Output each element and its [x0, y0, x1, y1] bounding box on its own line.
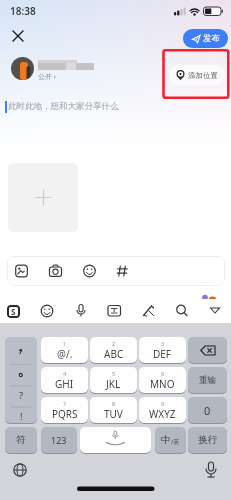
staticText: 4 [63, 370, 67, 377]
button[interactable]: 9 [139, 397, 186, 423]
button[interactable]: 2 [90, 337, 137, 363]
button[interactable] [72, 302, 90, 320]
staticText: 5 [112, 370, 116, 377]
button[interactable] [206, 302, 224, 320]
staticText: 18:38 [10, 4, 36, 18]
button[interactable]: 发布 [183, 29, 228, 48]
staticText: 换行 [198, 434, 217, 446]
button[interactable]: S [7, 305, 20, 318]
staticText: 123 [51, 434, 67, 446]
button[interactable] [8, 26, 28, 46]
staticText: MNO [150, 377, 175, 391]
button[interactable] [105, 302, 123, 320]
staticText: TUV [104, 407, 123, 421]
staticText: 符 [16, 434, 26, 446]
button[interactable]: 1 [41, 337, 88, 363]
staticText: 发布 [203, 33, 220, 44]
staticText: 添加位置 [188, 71, 218, 80]
staticText: ABC [104, 347, 124, 361]
button[interactable] [80, 427, 151, 453]
button[interactable]: 123 [41, 427, 77, 453]
staticText: WXYZ [149, 407, 176, 421]
staticText: 重输 [199, 375, 216, 386]
staticText: 公开 › [38, 72, 56, 82]
staticText: 7 [63, 400, 67, 407]
button[interactable] [139, 302, 157, 320]
staticText: GHI [55, 377, 74, 391]
staticText: 6 [161, 370, 165, 377]
staticText: ! [20, 410, 23, 423]
button[interactable]: 4 [41, 367, 88, 393]
button[interactable]: 6 [139, 367, 186, 393]
button[interactable] [81, 262, 99, 280]
staticText: @/. [57, 347, 73, 361]
button[interactable]: 中 [155, 427, 186, 453]
button[interactable]: 换行 [188, 427, 227, 453]
staticText: 3 [161, 340, 165, 347]
staticText: ? [19, 389, 24, 402]
button[interactable]: ? [5, 337, 37, 423]
button[interactable]: 符 [5, 427, 37, 453]
button[interactable] [38, 302, 56, 320]
button[interactable]: 重输 [188, 367, 227, 393]
button[interactable]: 5 [90, 367, 137, 393]
staticText: PQRS [52, 407, 78, 421]
staticText: 1 [63, 340, 67, 347]
staticText: /英 [171, 438, 180, 446]
staticText: 中 [161, 434, 171, 446]
button[interactable] [13, 262, 31, 280]
button[interactable] [188, 337, 227, 363]
button[interactable]: 3 [139, 337, 186, 363]
staticText: DEF [153, 347, 172, 361]
button[interactable] [47, 262, 65, 280]
button[interactable] [114, 262, 132, 280]
staticText: 9 [161, 400, 165, 407]
staticText: 2 [112, 340, 116, 347]
button[interactable]: 8 [90, 397, 137, 423]
staticText: 8 [112, 400, 116, 407]
button[interactable]: 0 [188, 397, 227, 423]
button[interactable] [173, 302, 191, 320]
staticText: 0 [204, 403, 211, 418]
button[interactable] [8, 163, 78, 232]
staticText: S [11, 306, 16, 317]
button[interactable]: 7 [41, 397, 88, 423]
button[interactable]: 添加位置 [169, 65, 225, 85]
staticText: 此时此地，想和大家分享什么 [8, 101, 119, 112]
staticText: JKL [106, 377, 121, 391]
